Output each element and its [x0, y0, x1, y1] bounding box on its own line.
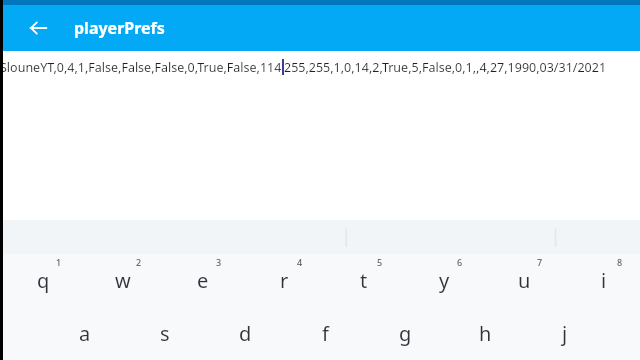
button[interactable]: d	[205, 307, 285, 360]
staticText: s	[160, 320, 170, 347]
button[interactable]: u	[484, 254, 564, 307]
staticText: f	[322, 320, 329, 347]
button[interactable]: q	[3, 254, 83, 307]
staticText: i	[601, 267, 607, 294]
staticText: 6	[457, 256, 463, 268]
staticText: a	[79, 320, 91, 347]
staticText: j	[562, 320, 568, 347]
button[interactable]: j	[525, 307, 605, 360]
button[interactable]: f	[285, 307, 365, 360]
staticText: h	[479, 320, 492, 347]
staticText: r	[280, 267, 289, 294]
staticText: q	[37, 267, 50, 294]
staticText: g	[399, 320, 412, 347]
staticText: 3	[216, 256, 222, 268]
button[interactable]: h	[445, 307, 525, 360]
button[interactable]: Navigate up	[20, 10, 56, 46]
staticText: 2	[136, 256, 142, 268]
staticText: u	[518, 267, 531, 294]
button[interactable]: g	[365, 307, 445, 360]
button[interactable]: w	[83, 254, 163, 307]
staticText: 255,255,1,0,14,2,True,5,False,0,1,,4,27,…	[284, 59, 640, 76]
staticText: playerPrefs	[74, 17, 165, 39]
staticText: w	[115, 267, 131, 294]
staticText: e	[197, 267, 209, 294]
button[interactable]: a	[45, 307, 125, 360]
staticText: SlouneYT,0,4,1,False,False,False,0,True,…	[0, 59, 282, 76]
staticText: 7	[537, 256, 543, 268]
staticText: 4	[297, 256, 303, 268]
button[interactable]: e	[163, 254, 243, 307]
button[interactable]: r	[244, 254, 324, 307]
staticText: d	[239, 320, 252, 347]
button[interactable]: t	[324, 254, 404, 307]
staticText: 8	[617, 256, 623, 268]
staticText: 1	[56, 256, 62, 268]
button[interactable]: i	[564, 254, 640, 307]
staticText: 5	[377, 256, 383, 268]
staticText: y	[439, 267, 450, 294]
button[interactable]: SlouneYT,0,4,1,False,False,False,0,True,…	[0, 55, 640, 79]
button[interactable]: y	[404, 254, 484, 307]
staticText: t	[360, 267, 368, 294]
button[interactable]: s	[125, 307, 205, 360]
